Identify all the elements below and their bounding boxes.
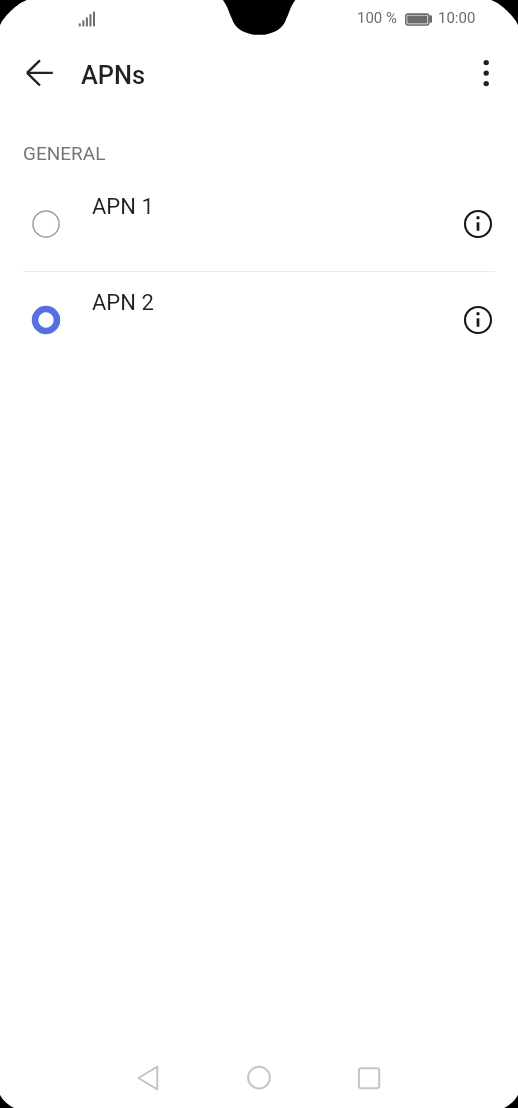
staticText: 100 % — [357, 9, 397, 27]
button[interactable]: APN details — [455, 201, 500, 246]
staticText: APN 2 — [92, 290, 154, 316]
button[interactable]: APN 1 — [0, 176, 518, 271]
staticText: GENERAL — [23, 142, 106, 164]
button[interactable]: Navigate up — [12, 46, 66, 100]
staticText: APNs — [81, 60, 146, 90]
button[interactable]: APN details — [455, 297, 500, 342]
button[interactable]: Recent apps — [345, 1054, 393, 1102]
button[interactable]: Home — [235, 1053, 283, 1101]
staticText: 10:00 — [438, 9, 476, 27]
button[interactable]: Back — [124, 1054, 172, 1102]
staticText: APN 1 — [92, 194, 154, 220]
button[interactable]: More options — [462, 49, 510, 97]
button[interactable]: APN 2 — [0, 272, 518, 367]
